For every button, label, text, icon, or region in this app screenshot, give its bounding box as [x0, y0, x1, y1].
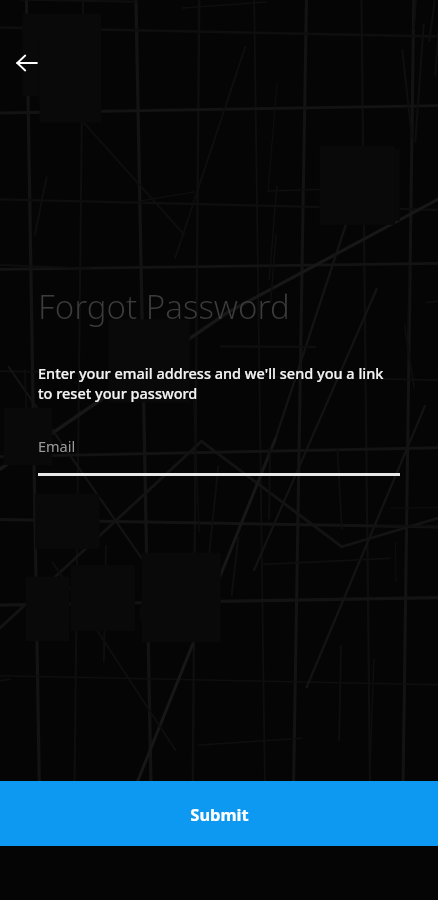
- staticText: Enter your email address and we'll send …: [38, 363, 400, 404]
- staticText: Forgot Password: [38, 284, 290, 329]
- staticText: Email: [38, 436, 76, 456]
- button[interactable]: Back: [6, 42, 48, 84]
- button[interactable]: Email: [38, 436, 400, 476]
- button[interactable]: Submit: [0, 781, 438, 846]
- staticText: Submit: [190, 803, 249, 825]
